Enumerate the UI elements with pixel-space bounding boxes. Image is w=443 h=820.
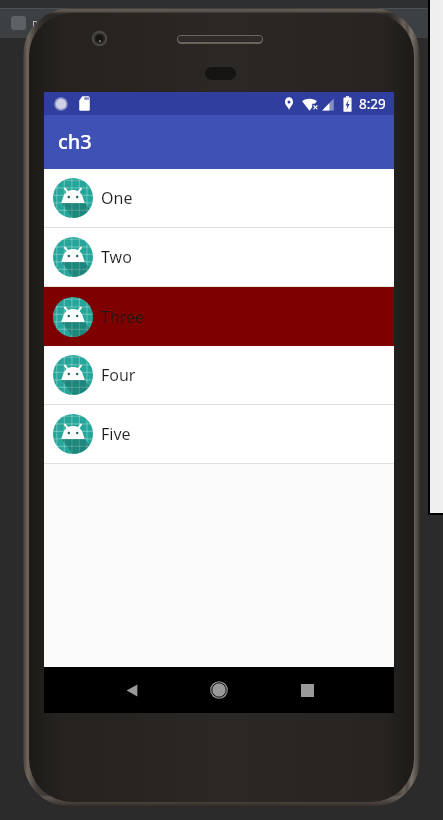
button[interactable]: Home bbox=[196, 667, 242, 713]
button[interactable]: Recents bbox=[284, 667, 330, 713]
button[interactable]: Two bbox=[44, 228, 394, 287]
staticText: Three bbox=[101, 306, 145, 328]
button[interactable]: Four bbox=[44, 346, 394, 405]
button[interactable]: Five bbox=[44, 405, 394, 464]
staticText: ch3 bbox=[58, 128, 92, 155]
staticText: 8:29 bbox=[359, 95, 386, 113]
staticText: One bbox=[101, 187, 133, 209]
staticText: Two bbox=[101, 246, 132, 268]
staticText: Four bbox=[101, 364, 136, 386]
button[interactable]: Three bbox=[44, 287, 394, 346]
button[interactable]: One bbox=[44, 169, 394, 228]
button[interactable]: Back bbox=[109, 667, 155, 713]
staticText: R bbox=[32, 18, 39, 32]
button[interactable]: Run bbox=[11, 16, 26, 30]
staticText: Five bbox=[101, 423, 131, 445]
